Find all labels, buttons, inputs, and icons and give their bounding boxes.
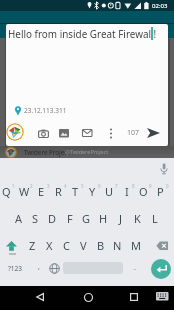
staticText: 2 [30, 183, 33, 189]
button[interactable]: T [67, 178, 84, 204]
staticText: D [48, 211, 57, 226]
button[interactable]: X [41, 232, 58, 258]
staticText: L [152, 211, 158, 226]
staticText: 107 [127, 128, 140, 138]
staticText: 5 [81, 183, 84, 189]
staticText: M [131, 238, 141, 253]
button[interactable] [78, 287, 98, 307]
button[interactable]: C [58, 232, 75, 258]
button[interactable]: F [61, 205, 78, 231]
staticText: R [55, 184, 62, 199]
button[interactable]: E [33, 178, 50, 204]
staticText: 23.12.113.311 [24, 106, 67, 115]
staticText: @TwidereProject [65, 148, 109, 155]
staticText: P [157, 184, 164, 199]
staticText: U [105, 184, 114, 199]
button[interactable] [30, 287, 50, 307]
staticText: 8 [132, 183, 135, 189]
staticText: A [15, 211, 23, 226]
staticText: 0 [166, 183, 169, 189]
staticText: W [19, 184, 30, 199]
staticText: Z [29, 238, 36, 253]
staticText: S [32, 211, 39, 226]
button[interactable] [150, 234, 174, 258]
staticText: O [139, 184, 148, 199]
staticText: V [80, 238, 87, 253]
staticText: . [134, 263, 136, 273]
staticText: G [82, 211, 91, 226]
button[interactable] [155, 160, 172, 177]
staticText: Y [89, 184, 96, 199]
button[interactable]: Z [24, 232, 41, 258]
button[interactable]: Q [0, 178, 15, 204]
staticText: B [97, 238, 105, 253]
button[interactable]: N [109, 232, 126, 258]
button[interactable]: I [118, 178, 135, 204]
button[interactable]: L [146, 205, 163, 231]
button[interactable] [105, 124, 117, 142]
button[interactable]: Y [84, 178, 101, 204]
staticText: 02:03 [152, 2, 168, 10]
staticText: 1 [12, 183, 15, 189]
staticText: X [46, 238, 53, 253]
button[interactable]: S [27, 205, 44, 231]
staticText: 4 [64, 183, 67, 189]
button[interactable]: H [95, 205, 112, 231]
button[interactable]: P [152, 178, 169, 204]
button[interactable]: ?123 [0, 255, 29, 282]
button[interactable]: J [112, 205, 129, 231]
staticText: 7 [115, 183, 118, 189]
button[interactable]: O [135, 178, 152, 204]
button[interactable] [34, 124, 52, 142]
button[interactable]: G [78, 205, 95, 231]
button[interactable]: D [44, 205, 61, 231]
staticText: Hello from inside Great Firewall! [8, 27, 157, 40]
button[interactable] [55, 124, 73, 142]
staticText: J [119, 211, 123, 226]
staticText: K [134, 211, 141, 226]
staticText: T [72, 184, 79, 199]
button[interactable] [152, 288, 172, 305]
staticText: N [113, 238, 122, 253]
button[interactable]: W [16, 178, 33, 204]
button[interactable] [151, 259, 171, 279]
staticText: ?123 [8, 264, 22, 273]
button[interactable]: B [92, 232, 109, 258]
staticText: 6 [98, 183, 101, 189]
button[interactable]: R [50, 178, 67, 204]
button[interactable]: U [101, 178, 118, 204]
staticText: 9 [149, 183, 152, 189]
staticText: Twidere Project [24, 148, 70, 156]
staticText: I [125, 184, 129, 199]
staticText: E [38, 184, 45, 199]
button[interactable] [0, 234, 23, 258]
staticText: Q [2, 184, 11, 199]
button[interactable] [44, 257, 65, 280]
button[interactable]: V [75, 232, 92, 258]
button[interactable] [6, 123, 24, 141]
button[interactable] [78, 124, 96, 142]
staticText: 3 [47, 183, 50, 189]
staticText: F [67, 211, 73, 226]
staticText: , [38, 262, 40, 272]
button[interactable] [144, 124, 162, 142]
staticText: H [99, 211, 108, 226]
button[interactable]: M [127, 232, 144, 258]
button[interactable]: K [129, 205, 146, 231]
staticText: C [63, 238, 70, 253]
button[interactable]: A [10, 205, 27, 231]
button[interactable] [124, 287, 144, 307]
